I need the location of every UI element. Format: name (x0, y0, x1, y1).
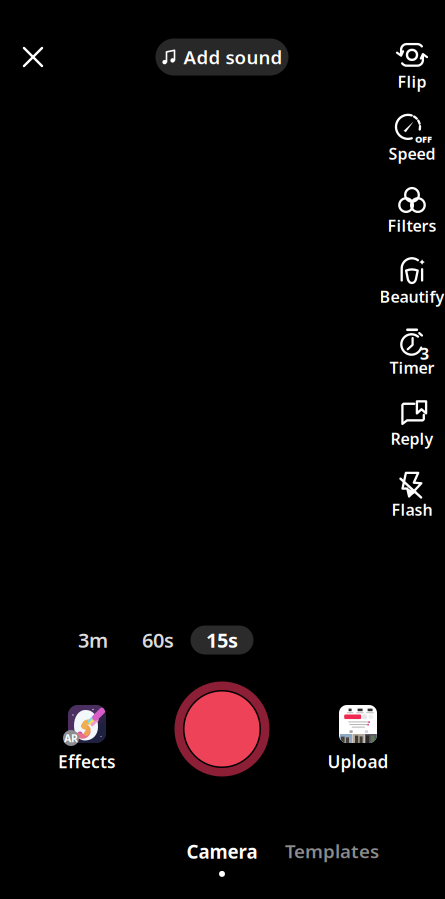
button[interactable]: Upload (313, 705, 403, 773)
button[interactable]: Add sound (155, 38, 288, 75)
button[interactable]: 3m (63, 625, 123, 654)
button[interactable]: Close (9, 33, 57, 81)
staticText: Beautify (379, 286, 444, 307)
button[interactable]: Reply (379, 399, 445, 447)
staticText: 15s (206, 627, 238, 653)
staticText: AR (64, 731, 78, 745)
button[interactable]: 60s (128, 625, 188, 654)
staticText: Reply (390, 428, 433, 449)
staticText: Speed (388, 143, 435, 164)
staticText: 3m (78, 627, 108, 653)
button[interactable]: AR (42, 705, 132, 773)
button[interactable]: Record (174, 681, 269, 776)
button[interactable]: Flip (379, 42, 445, 90)
staticText: Flip (397, 71, 426, 92)
staticText: Timer (389, 357, 434, 378)
staticText: Upload (327, 750, 388, 773)
staticText: Add sound (183, 45, 282, 69)
button[interactable]: Flash (379, 470, 445, 518)
staticText: Filters (387, 215, 436, 236)
button[interactable]: Beautify (379, 257, 445, 305)
staticText: 3 (420, 343, 429, 364)
button[interactable]: 15s (190, 625, 253, 654)
staticText: 60s (142, 627, 174, 653)
button[interactable]: 3 (379, 328, 445, 376)
button[interactable]: Camera (176, 839, 268, 877)
staticText: OFF (415, 133, 432, 145)
staticText: Flash (391, 499, 432, 520)
button[interactable]: Filters (379, 186, 445, 234)
button[interactable]: OFF (379, 114, 445, 162)
staticText: Templates (285, 839, 379, 863)
staticText: Effects (58, 750, 116, 773)
staticText: Camera (186, 839, 257, 864)
button[interactable]: Templates (277, 838, 387, 864)
